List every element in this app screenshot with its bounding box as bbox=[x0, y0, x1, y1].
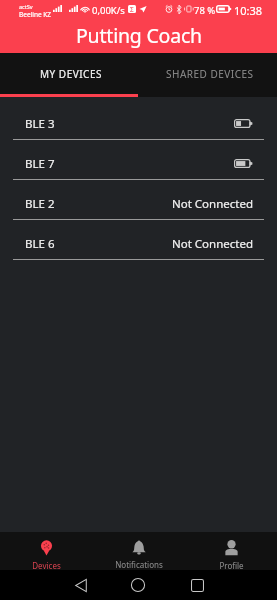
button[interactable]: Profile bbox=[185, 532, 277, 570]
staticText: BLE 6 bbox=[25, 236, 55, 252]
button[interactable]: Home bbox=[130, 577, 146, 593]
button[interactable]: BLE 2 bbox=[0, 180, 277, 220]
button[interactable]: Notifications bbox=[93, 532, 185, 570]
button[interactable]: Back bbox=[74, 578, 88, 592]
staticText: SHARED DEVICES bbox=[166, 67, 254, 81]
button[interactable]: Devices bbox=[0, 532, 93, 570]
button[interactable]: BLE 7 bbox=[0, 140, 277, 180]
staticText: Not Connected bbox=[172, 196, 253, 212]
staticText: Profile bbox=[219, 560, 244, 570]
staticText: Notifications bbox=[115, 559, 163, 570]
staticText: Not Connected bbox=[172, 236, 253, 252]
staticText: BLE 7 bbox=[25, 156, 55, 172]
button[interactable]: BLE 6 bbox=[0, 220, 277, 260]
staticText: MY DEVICES bbox=[40, 67, 102, 81]
staticText: BLE 2 bbox=[25, 196, 55, 212]
button[interactable]: BLE 3 bbox=[0, 100, 277, 140]
button[interactable]: MY DEVICES bbox=[0, 53, 138, 94]
staticText: Σ bbox=[130, 5, 134, 13]
staticText: 0,00K/s bbox=[92, 4, 125, 17]
button[interactable]: Recents bbox=[190, 578, 205, 593]
staticText: Putting Coach bbox=[76, 22, 202, 49]
button[interactable]: SHARED DEVICES bbox=[138, 53, 277, 94]
staticText: Devices bbox=[32, 560, 61, 570]
staticText: BLE 3 bbox=[25, 116, 55, 132]
staticText: actSv bbox=[19, 3, 33, 10]
staticText: Beeline KZ bbox=[19, 10, 52, 19]
staticText: 10:38 bbox=[234, 3, 263, 18]
staticText: 78 % bbox=[194, 4, 216, 17]
